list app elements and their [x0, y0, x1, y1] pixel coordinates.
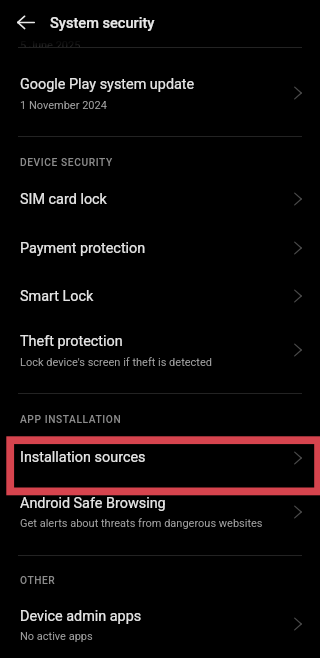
staticText: Installation sources [20, 449, 146, 466]
button[interactable] [0, 437, 320, 496]
staticText: Payment protection [20, 240, 146, 257]
button[interactable] [0, 496, 320, 555]
staticText: 5 June 2025 [20, 39, 81, 47]
button[interactable]: Back [8, 8, 36, 36]
staticText: Google Play system update [20, 76, 195, 93]
staticText: Get alerts about threats from dangerous … [20, 517, 263, 530]
staticText: No active apps [20, 630, 93, 643]
staticText: SIM card lock [20, 191, 107, 208]
staticText: APP INSTALLATION [20, 414, 122, 426]
button[interactable] [0, 47, 320, 136]
staticText: Device admin apps [20, 608, 142, 625]
staticText: System security [50, 14, 155, 31]
staticText: DEVICE SECURITY [20, 157, 113, 169]
button[interactable] [0, 320, 320, 393]
button[interactable] [0, 176, 320, 224]
staticText: OTHER [20, 575, 56, 587]
staticText: Lock device's screen if theft is detecte… [20, 356, 212, 369]
staticText: 1 November 2024 [20, 99, 107, 112]
staticText: Android Safe Browsing [20, 495, 166, 512]
staticText: Theft protection [20, 333, 123, 350]
staticText: Smart Lock [20, 288, 94, 305]
button[interactable] [0, 272, 320, 320]
button[interactable] [0, 224, 320, 272]
button[interactable] [0, 596, 320, 658]
